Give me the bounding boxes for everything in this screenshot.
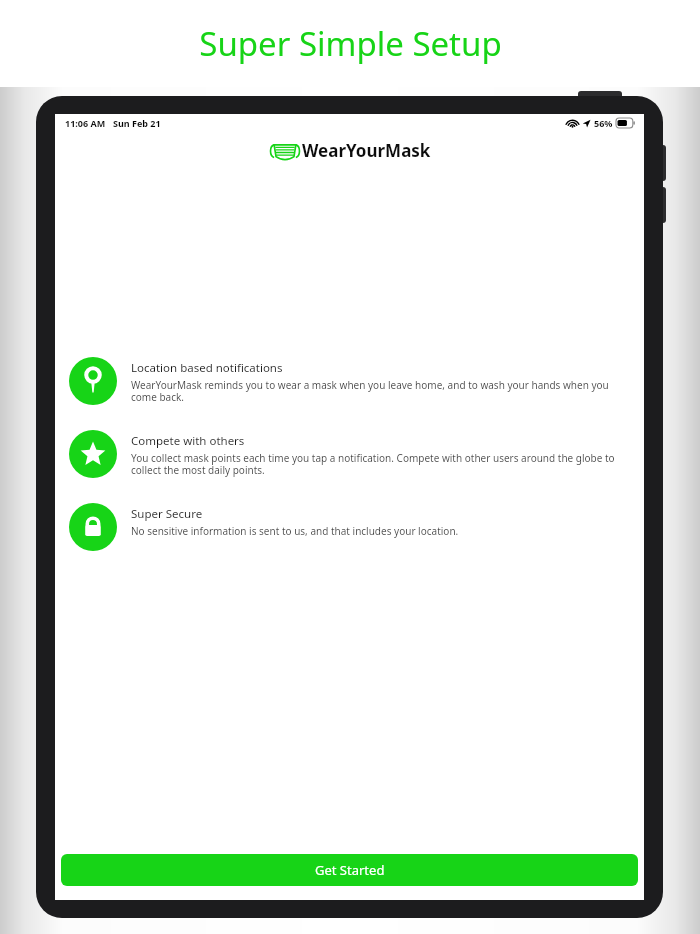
staticText: 56%	[594, 117, 613, 129]
staticText: Sun Feb 21	[113, 117, 161, 129]
staticText: No sensitive information is sent to us, …	[131, 524, 459, 538]
staticText: Super Secure	[131, 506, 203, 522]
button[interactable]: Compete	[69, 430, 630, 478]
other: Secure	[69, 503, 117, 551]
other: Location	[69, 357, 117, 405]
staticText: Location based notifications	[131, 360, 283, 376]
button[interactable]: Location	[69, 357, 630, 405]
staticText: WearYourMask reminds you to wear a mask …	[131, 378, 630, 404]
button[interactable]: Secure	[69, 503, 630, 551]
staticText: Super Simple Setup	[199, 21, 502, 66]
staticText: Compete with others	[131, 433, 245, 449]
staticText: Get Started	[315, 861, 385, 879]
other: Mask logo	[269, 140, 301, 162]
button[interactable]: Get Started	[61, 854, 638, 886]
staticText: You collect mask points each time you ta…	[131, 451, 630, 477]
staticText: 11:06 AM	[65, 117, 106, 129]
other: Compete	[69, 430, 117, 478]
staticText: WearYourMask	[302, 139, 431, 162]
